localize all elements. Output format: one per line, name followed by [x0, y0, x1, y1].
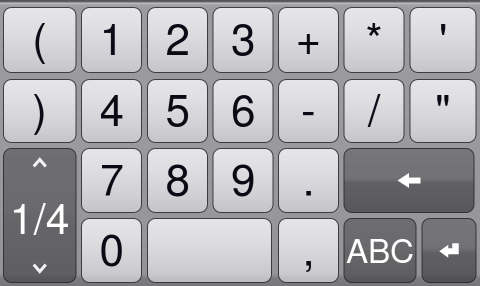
button[interactable]: , [278, 218, 338, 282]
button[interactable]: ( [3, 7, 76, 72]
button[interactable]: / [344, 79, 404, 142]
button[interactable]: 2 [147, 7, 207, 72]
staticText: 8 [165, 145, 189, 208]
staticText: , [302, 215, 314, 278]
staticText: . [302, 145, 314, 208]
button[interactable]: * [344, 7, 404, 72]
button[interactable]: ABC [344, 218, 416, 282]
staticText: 2 [165, 4, 189, 67]
button[interactable]: 9 [213, 148, 273, 212]
button[interactable]: Delete [344, 148, 474, 212]
button[interactable]: 7 [81, 148, 141, 212]
button[interactable]: ) [3, 79, 76, 142]
button[interactable]: ' [410, 7, 476, 72]
button[interactable]: . [278, 148, 338, 212]
staticText: 3 [231, 4, 255, 67]
staticText: * [365, 4, 382, 67]
button[interactable]: 8 [147, 148, 207, 212]
staticText: 9 [231, 145, 255, 208]
button[interactable]: 3 [213, 7, 273, 72]
staticText: 7 [99, 145, 123, 208]
staticText: + [295, 4, 321, 67]
staticText: ABC [346, 225, 414, 272]
button[interactable]: space [147, 218, 271, 282]
staticText [203, 215, 215, 278]
button[interactable]: Page 1 of 4 [3, 148, 76, 282]
button[interactable]: " [410, 79, 476, 142]
staticText: ( [32, 4, 47, 67]
staticText: ) [32, 75, 47, 138]
staticText: 4 [99, 75, 123, 138]
staticText: ' [439, 4, 447, 67]
button[interactable]: 1 [81, 7, 141, 72]
button[interactable]: Return [422, 218, 476, 282]
staticText: - [301, 75, 316, 138]
staticText: 0 [99, 215, 123, 278]
button[interactable]: 5 [147, 79, 207, 142]
button[interactable]: - [278, 79, 338, 142]
staticText: / [368, 75, 380, 138]
button[interactable]: 4 [81, 79, 141, 142]
button[interactable]: 0 [81, 218, 141, 282]
staticText: 6 [231, 75, 255, 138]
button[interactable]: 6 [213, 79, 273, 142]
staticText: " [435, 75, 451, 138]
staticText: 1/4 [10, 185, 70, 246]
button[interactable]: + [278, 7, 338, 72]
staticText: 1 [99, 4, 123, 67]
staticText: 5 [165, 75, 189, 138]
